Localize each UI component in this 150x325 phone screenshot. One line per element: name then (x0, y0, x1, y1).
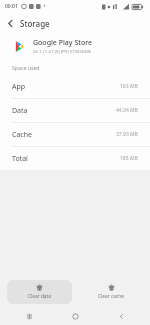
staticText: 44.04 MB (116, 107, 138, 114)
staticText: Space used (12, 64, 40, 71)
button[interactable]: Recent apps (12, 307, 46, 325)
button[interactable]: Clear data (7, 280, 72, 304)
staticText: Cache (12, 130, 32, 140)
button[interactable]: Cache (0, 123, 150, 146)
staticText: Clear data (28, 293, 51, 300)
staticText: 103 MB (120, 83, 138, 90)
button[interactable]: Navigate up (0, 13, 20, 33)
staticText: Storage (20, 18, 50, 29)
button[interactable]: Google Play Store (0, 33, 150, 59)
staticText: Google Play Store (33, 38, 93, 48)
button[interactable]: Total (0, 147, 150, 170)
button[interactable]: App (0, 75, 150, 98)
staticText: Data (12, 106, 28, 116)
staticText: 37.93 MB (116, 131, 138, 138)
button[interactable]: Data (0, 99, 150, 122)
staticText: App (12, 82, 26, 92)
staticText: 36.1.11-21 [0] [PR] 519039486 (33, 49, 92, 55)
button[interactable]: Clear cache (78, 280, 143, 304)
staticText: + (43, 3, 46, 10)
button[interactable]: Home (58, 307, 92, 325)
staticText: 185 MB (120, 155, 138, 162)
staticText: Total (12, 154, 28, 164)
staticText: 00:01 (5, 3, 18, 10)
button[interactable]: Back (104, 307, 138, 325)
staticText: Clear cache (98, 293, 124, 300)
